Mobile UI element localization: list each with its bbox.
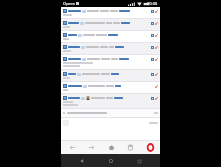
button[interactable]: Home	[102, 141, 120, 154]
button[interactable]	[61, 94, 160, 108]
button[interactable]: Tabs	[121, 141, 139, 154]
button[interactable]: Home	[105, 155, 117, 167]
button[interactable]	[61, 82, 160, 93]
button[interactable]	[61, 19, 160, 30]
button[interactable]	[61, 31, 160, 42]
button[interactable]	[61, 43, 160, 54]
staticText: 10:08	[147, 1, 158, 6]
button[interactable]	[61, 55, 160, 69]
button[interactable]: Opera menu	[141, 141, 159, 154]
staticText: Opera	[63, 1, 75, 6]
button[interactable]: Forward	[82, 141, 100, 154]
button[interactable]: Back	[63, 141, 81, 154]
button[interactable]: Recent apps	[133, 155, 145, 167]
button[interactable]	[61, 109, 160, 117]
button[interactable]	[61, 70, 160, 81]
button[interactable]	[61, 7, 160, 18]
button[interactable]: Back	[76, 155, 88, 167]
